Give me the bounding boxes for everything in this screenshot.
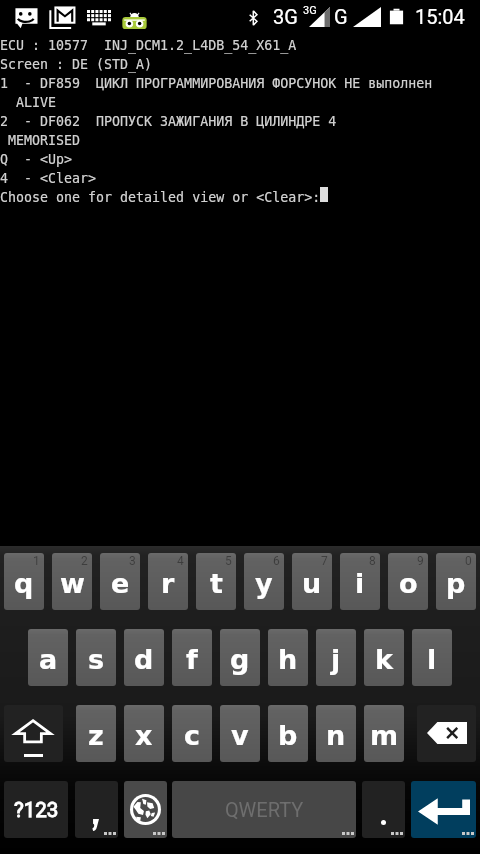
staticText: 2 <box>81 554 88 568</box>
staticText: 7 <box>321 554 328 568</box>
button[interactable]: x <box>124 705 164 762</box>
staticText: z <box>88 720 104 751</box>
staticText: u <box>302 568 322 599</box>
staticText: k <box>375 644 393 675</box>
button[interactable]: Period <box>362 781 405 838</box>
button[interactable]: h <box>268 629 308 686</box>
staticText: p <box>446 568 466 599</box>
staticText: b <box>278 720 298 751</box>
staticText: 15:04 <box>415 5 465 28</box>
staticText: c <box>184 720 201 751</box>
staticText: w <box>60 568 85 599</box>
staticText: g <box>230 644 250 675</box>
staticText: s <box>88 644 105 675</box>
button[interactable]: b <box>268 705 308 762</box>
staticText: m <box>370 720 399 751</box>
staticText: G <box>334 5 348 28</box>
button[interactable]: r <box>148 553 188 610</box>
staticText: d <box>134 644 154 675</box>
staticText: i <box>355 568 365 599</box>
button[interactable]: o <box>388 553 428 610</box>
button[interactable]: n <box>316 705 356 762</box>
staticText: ?123 <box>14 798 59 822</box>
staticText: q <box>14 568 34 599</box>
button[interactable]: z <box>76 705 116 762</box>
staticText: e <box>111 568 130 599</box>
staticText: j <box>331 644 341 675</box>
staticText: y <box>255 568 273 599</box>
staticText: 3G <box>273 5 298 28</box>
button[interactable]: l <box>412 629 452 686</box>
button[interactable]: Backspace <box>417 705 476 762</box>
button[interactable]: Change language <box>124 781 167 838</box>
button[interactable]: w <box>52 553 92 610</box>
button[interactable]: Comma <box>75 781 118 838</box>
staticText: 3G <box>303 4 317 17</box>
button[interactable]: e <box>100 553 140 610</box>
staticText: 0 <box>465 554 472 568</box>
button[interactable]: a <box>28 629 68 686</box>
button[interactable]: m <box>364 705 404 762</box>
button[interactable]: t <box>196 553 236 610</box>
staticText: l <box>427 644 437 675</box>
button[interactable]: c <box>172 705 212 762</box>
button[interactable]: d <box>124 629 164 686</box>
staticText: 3 <box>129 554 136 568</box>
staticText: v <box>231 720 249 751</box>
button[interactable]: y <box>244 553 284 610</box>
button[interactable]: Shift <box>4 705 63 762</box>
staticText: t <box>210 568 223 599</box>
button[interactable]: u <box>292 553 332 610</box>
staticText: x <box>135 720 153 751</box>
staticText: o <box>399 568 418 599</box>
staticText: f <box>186 644 198 675</box>
staticText: 9 <box>417 554 424 568</box>
button[interactable]: i <box>340 553 380 610</box>
staticText: QWERTY <box>225 798 304 821</box>
button[interactable]: p <box>436 553 476 610</box>
button[interactable]: ?123 <box>4 781 68 838</box>
button[interactable]: k <box>364 629 404 686</box>
button[interactable]: s <box>76 629 116 686</box>
button[interactable]: Enter <box>411 781 476 838</box>
staticText: 4 <box>177 554 184 568</box>
staticText: 1 <box>33 554 40 568</box>
staticText: a <box>39 644 58 675</box>
button[interactable]: v <box>220 705 260 762</box>
staticText: n <box>326 720 346 751</box>
button[interactable]: f <box>172 629 212 686</box>
button[interactable]: g <box>220 629 260 686</box>
staticText: 5 <box>225 554 232 568</box>
button[interactable]: j <box>316 629 356 686</box>
staticText: 8 <box>369 554 376 568</box>
staticText: ECU : 10577 INJ_DCM1.2_L4DB_54_X61_A Scr… <box>0 38 433 205</box>
button[interactable]: Space <box>172 781 356 838</box>
button[interactable]: q <box>4 553 44 610</box>
staticText: h <box>278 644 298 675</box>
staticText: r <box>161 568 175 599</box>
staticText: 6 <box>273 554 280 568</box>
